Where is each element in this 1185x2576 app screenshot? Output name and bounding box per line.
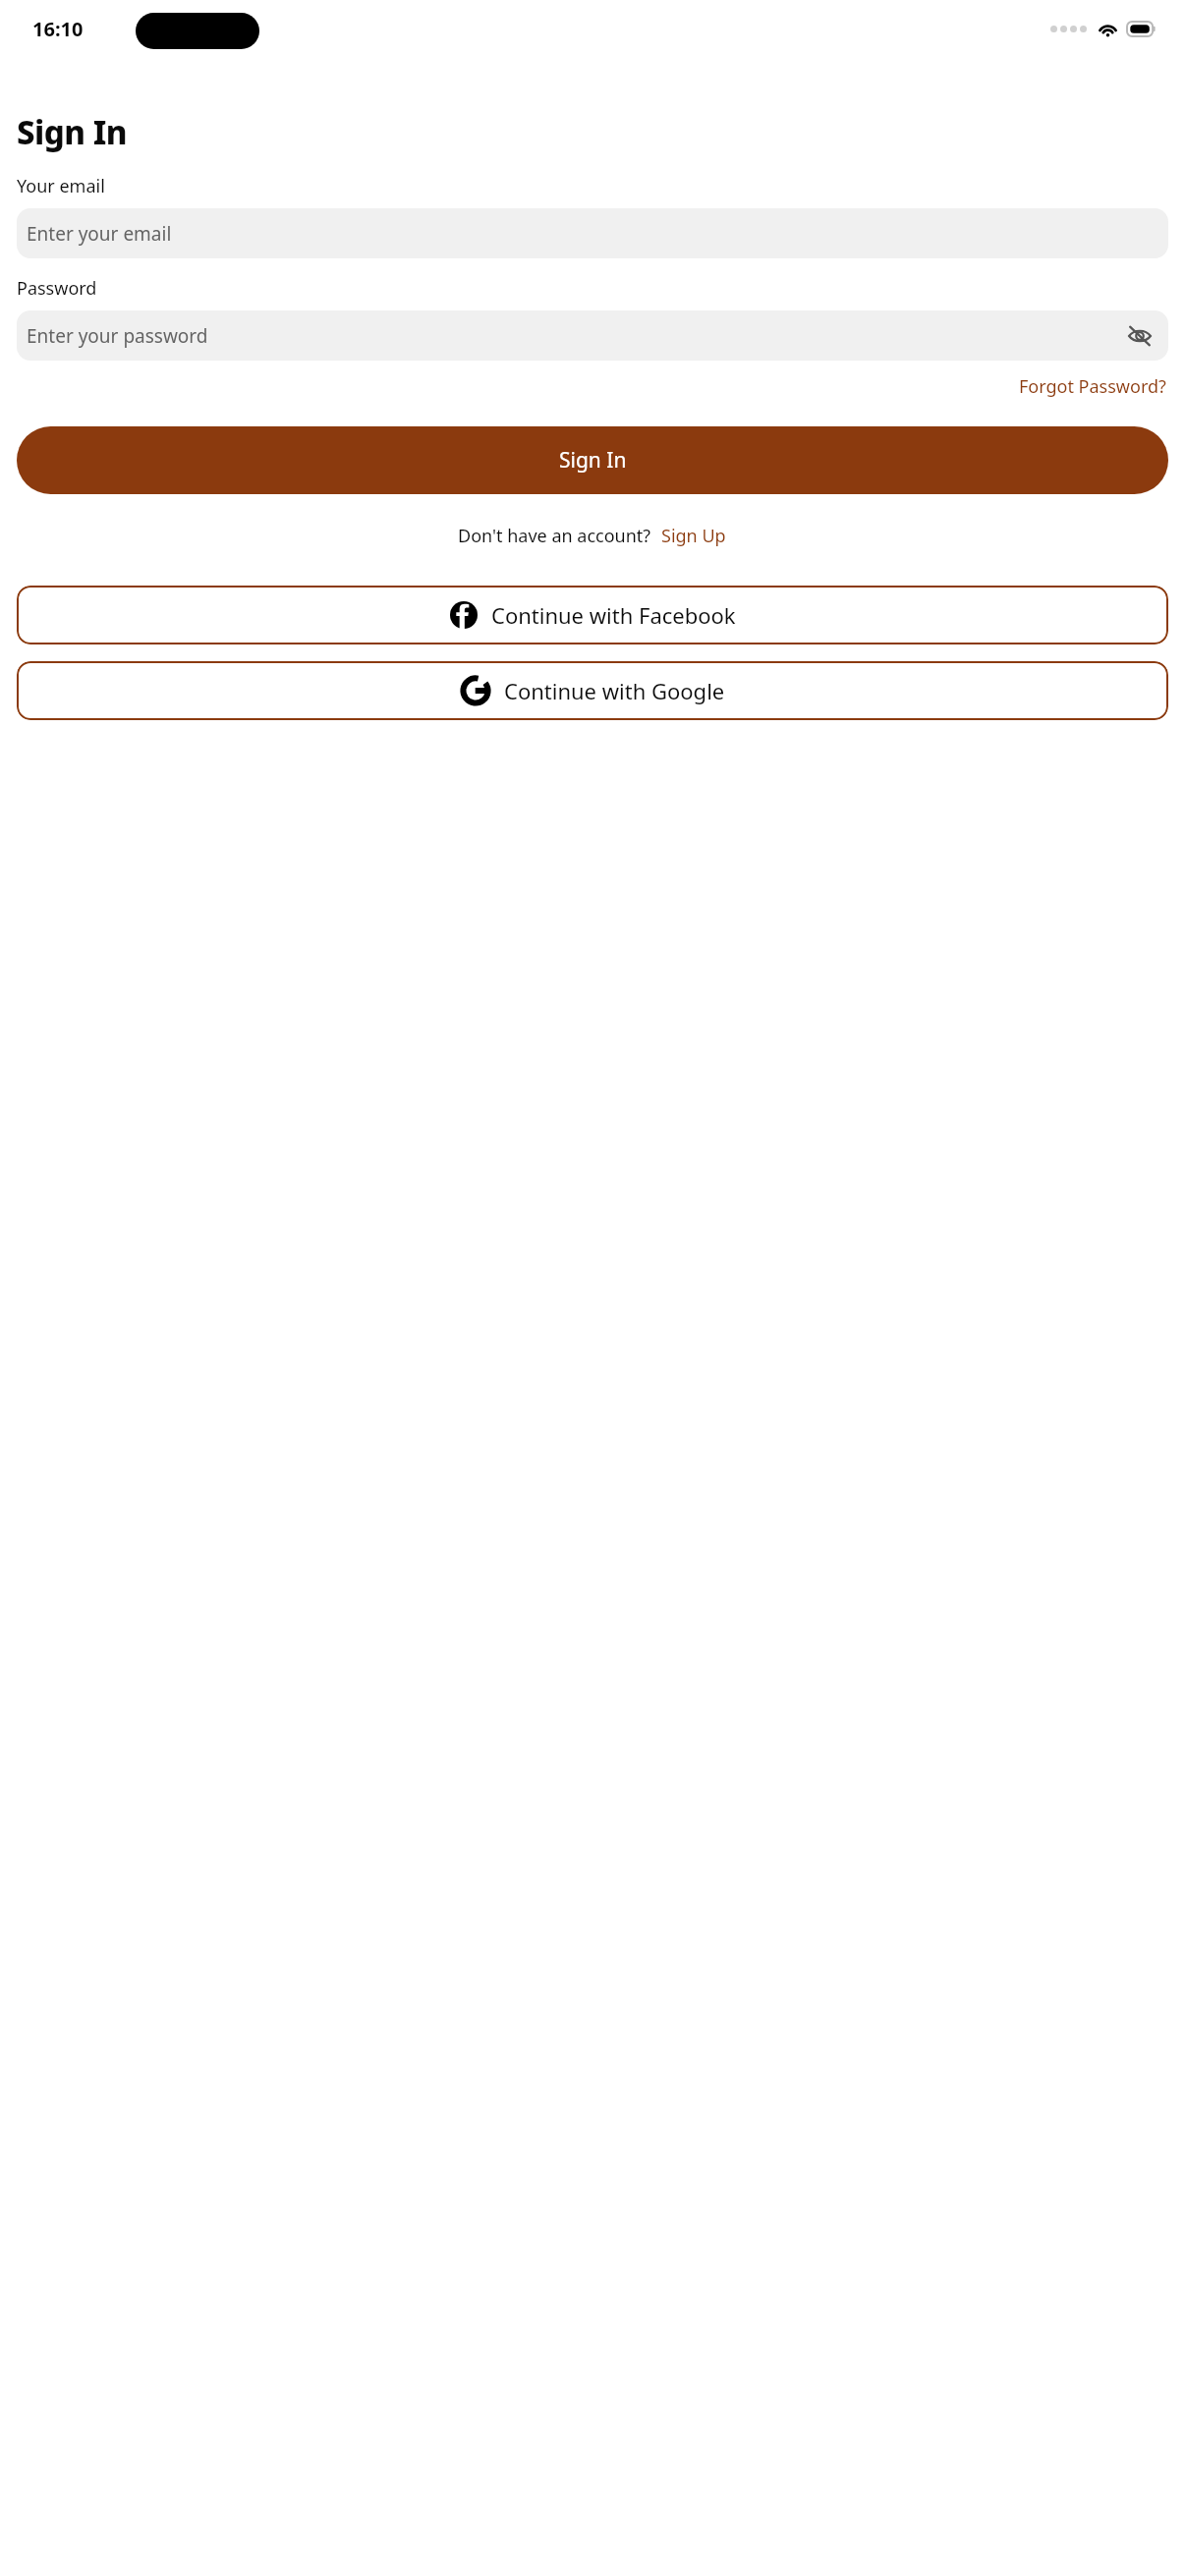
staticText: Your email bbox=[17, 174, 105, 198]
button[interactable]: Sign Up bbox=[659, 521, 728, 551]
button[interactable]: Show password bbox=[1123, 319, 1157, 353]
staticText: Sign In bbox=[17, 110, 128, 154]
staticText: Sign In bbox=[559, 446, 627, 475]
staticText: Enter your email bbox=[27, 221, 172, 247]
button[interactable]: Continue with Facebook bbox=[17, 586, 1168, 644]
button[interactable]: Forgot Password? bbox=[1017, 370, 1168, 403]
button[interactable]: Enter your password bbox=[17, 310, 1168, 361]
staticText: Forgot Password? bbox=[1019, 374, 1166, 399]
staticText: Continue with Google bbox=[504, 676, 725, 705]
staticText: Continue with Facebook bbox=[491, 600, 736, 630]
staticText: Password bbox=[17, 276, 97, 301]
staticText: Don't have an account? bbox=[458, 524, 651, 548]
button[interactable]: Sign In bbox=[17, 426, 1168, 494]
staticText: 16:10 bbox=[32, 16, 84, 42]
staticText: Sign Up bbox=[661, 524, 726, 548]
staticText: Enter your password bbox=[27, 323, 208, 349]
button[interactable]: Continue with Google bbox=[17, 661, 1168, 720]
button[interactable]: Enter your email bbox=[17, 208, 1168, 258]
